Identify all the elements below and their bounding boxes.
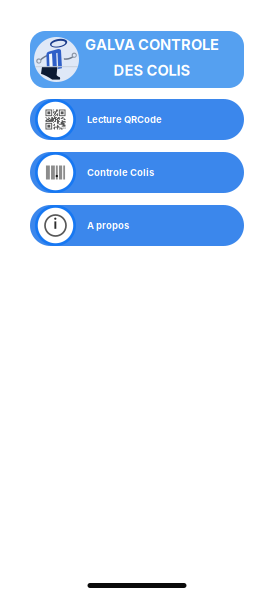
staticText: Lecture QRCode [87, 114, 162, 125]
staticText: DES COLIS [113, 61, 190, 79]
staticText: GALVA CONTROLE [85, 36, 219, 53]
staticText: Controle Colis [87, 167, 154, 178]
button[interactable]: GALVA CONTROLE [30, 31, 244, 88]
staticText: A propos [87, 220, 129, 231]
button[interactable]: A propos [30, 205, 244, 246]
button[interactable]: Lecture QRCode [30, 99, 244, 140]
button[interactable]: Controle Colis [30, 152, 244, 193]
